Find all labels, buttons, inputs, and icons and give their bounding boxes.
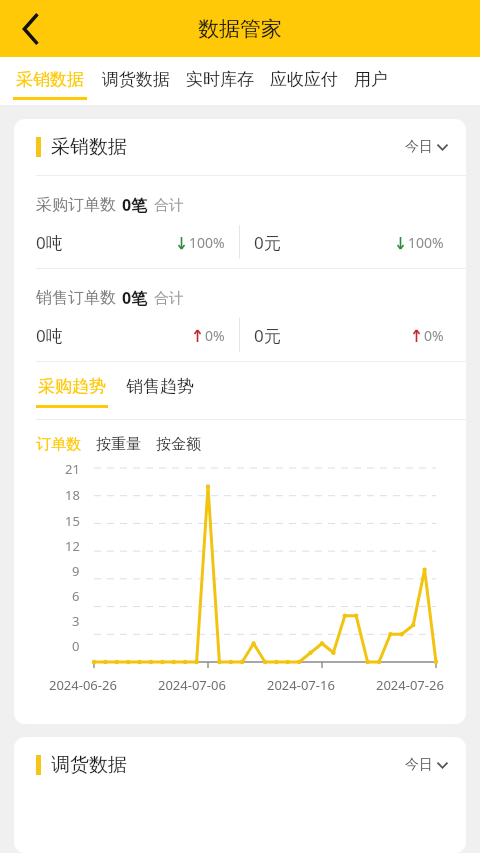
button[interactable]: 应收应付 bbox=[262, 57, 346, 97]
button[interactable]: 调货数据 bbox=[94, 57, 178, 97]
staticText: 21 bbox=[65, 460, 80, 478]
staticText: 9 bbox=[72, 562, 80, 580]
staticText: 采销数据 bbox=[51, 135, 127, 159]
staticText: 合计 bbox=[154, 196, 184, 215]
staticText: 15 bbox=[65, 512, 80, 530]
staticText: 调货数据 bbox=[102, 69, 170, 90]
staticText: 0笔 bbox=[122, 287, 148, 309]
staticText: 0 bbox=[72, 637, 80, 655]
staticText: 数据管家 bbox=[198, 16, 282, 42]
staticText: 0% bbox=[205, 326, 225, 345]
button[interactable]: 今日 bbox=[405, 138, 448, 156]
staticText: 100% bbox=[189, 233, 225, 252]
button[interactable]: 按金额 bbox=[156, 435, 201, 454]
staticText: 采购趋势 bbox=[38, 376, 106, 397]
staticText: 0吨 bbox=[36, 231, 63, 254]
button[interactable]: 今日 bbox=[405, 756, 448, 774]
button[interactable]: 订单数 bbox=[36, 435, 81, 454]
staticText: 用户 bbox=[354, 69, 388, 90]
button[interactable]: Back bbox=[6, 6, 52, 52]
staticText: 销售订单数 bbox=[36, 288, 116, 308]
staticText: 2024-06-26 bbox=[49, 676, 117, 694]
staticText: 0% bbox=[424, 326, 444, 345]
staticText: 0元 bbox=[254, 324, 281, 347]
staticText: 应收应付 bbox=[270, 69, 338, 90]
button[interactable]: 用户 bbox=[346, 57, 396, 97]
staticText: 18 bbox=[65, 486, 80, 504]
button[interactable]: 采销数据 bbox=[6, 57, 94, 100]
staticText: 今日 bbox=[405, 138, 433, 156]
staticText: 今日 bbox=[405, 756, 433, 774]
staticText: 采销数据 bbox=[16, 69, 84, 90]
staticText: 实时库存 bbox=[186, 69, 254, 90]
staticText: 2024-07-16 bbox=[267, 676, 335, 694]
staticText: 0元 bbox=[254, 231, 281, 254]
staticText: 3 bbox=[72, 612, 80, 630]
staticText: 12 bbox=[65, 537, 80, 555]
staticText: 采购订单数 bbox=[36, 195, 116, 215]
staticText: 调货数据 bbox=[51, 753, 127, 777]
staticText: 0笔 bbox=[122, 194, 148, 216]
staticText: 合计 bbox=[154, 289, 184, 308]
button[interactable]: 按重量 bbox=[96, 435, 141, 454]
staticText: 2024-07-26 bbox=[376, 676, 444, 694]
staticText: 100% bbox=[408, 233, 444, 252]
staticText: 6 bbox=[72, 587, 80, 605]
button[interactable]: 采购趋势 bbox=[36, 376, 108, 408]
button[interactable]: 实时库存 bbox=[178, 57, 262, 97]
staticText: 2024-07-06 bbox=[158, 676, 226, 694]
button[interactable]: 销售趋势 bbox=[126, 376, 194, 397]
staticText: 0吨 bbox=[36, 324, 63, 347]
